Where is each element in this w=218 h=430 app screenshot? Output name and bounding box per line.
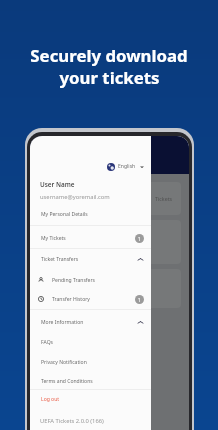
staticText: your tickets: [59, 66, 160, 89]
staticText: My Personal Details: [41, 211, 88, 218]
button[interactable]: Terms and Conditions: [30, 371, 151, 391]
button[interactable]: Privacy Notification: [30, 352, 151, 372]
staticText: Privacy Notification: [41, 359, 87, 366]
button[interactable]: My Personal Details: [30, 204, 151, 224]
staticText: User Name: [40, 180, 75, 189]
staticText: 1: [138, 236, 141, 242]
other: Language: [107, 163, 115, 171]
button[interactable]: My Tickets: [30, 228, 151, 248]
staticText: Log out: [41, 396, 60, 403]
staticText: 1: [138, 297, 141, 303]
staticText: UEFA Tickets 2.0.0 (166): [40, 417, 104, 425]
staticText: Securely download: [30, 44, 188, 67]
staticText: FAQs: [41, 339, 54, 346]
staticText: Transfer History: [52, 296, 90, 303]
staticText: username@yoremail.com: [40, 193, 110, 201]
staticText: Ticket Transfers: [41, 256, 79, 263]
button[interactable]: Ticket Transfers: [30, 249, 151, 269]
button[interactable]: Language: [107, 162, 144, 171]
staticText: My Tickets: [41, 235, 66, 242]
staticText: Tickets: [155, 195, 173, 202]
other: Collapse section: [138, 257, 143, 262]
staticText: Terms and Conditions: [41, 378, 93, 385]
staticText: More Information: [41, 319, 84, 326]
button[interactable]: Pending Transfers: [30, 270, 151, 290]
button[interactable]: FAQs: [30, 332, 151, 352]
button[interactable]: Log out: [30, 389, 151, 409]
button[interactable]: More Information: [30, 312, 151, 332]
other: Collapse section: [138, 320, 143, 325]
button[interactable]: Transfer History: [30, 289, 151, 309]
staticText: Pending Transfers: [52, 277, 95, 284]
staticText: English: [118, 163, 136, 170]
